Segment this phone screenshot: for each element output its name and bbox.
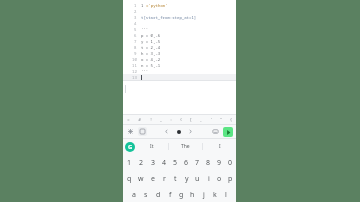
button[interactable]: e bbox=[147, 171, 159, 187]
staticText: G bbox=[128, 143, 133, 151]
button[interactable]: q bbox=[123, 171, 135, 187]
button[interactable]: Format bbox=[126, 127, 135, 136]
button[interactable]: 4 bbox=[159, 155, 170, 171]
staticText: h = 3,-3 bbox=[141, 51, 161, 56]
staticText: r bbox=[163, 174, 166, 184]
button[interactable]: Next bbox=[186, 127, 195, 136]
staticText: 8 bbox=[134, 45, 137, 50]
button[interactable]: 7 bbox=[192, 155, 203, 171]
staticText: " bbox=[220, 117, 222, 122]
button[interactable]: 5 bbox=[170, 155, 181, 171]
button[interactable]: ( bbox=[176, 115, 186, 124]
staticText: ''' bbox=[141, 69, 149, 74]
staticText: ( bbox=[180, 117, 182, 122]
staticText: h bbox=[190, 190, 195, 200]
button[interactable]: Keyboard bbox=[211, 127, 220, 136]
staticText: 1 bbox=[127, 158, 132, 168]
button[interactable]: f bbox=[164, 187, 176, 202]
button[interactable]: d bbox=[152, 187, 164, 202]
staticText: 0 bbox=[228, 158, 233, 168]
staticText: It bbox=[150, 143, 154, 150]
button[interactable]: Previous bbox=[162, 127, 171, 136]
staticText: n = 5,-1 bbox=[141, 63, 161, 68]
staticText: i bbox=[208, 174, 210, 184]
button[interactable]: w bbox=[135, 171, 147, 187]
button[interactable]: 9 bbox=[214, 155, 225, 171]
button[interactable]: { bbox=[226, 115, 236, 124]
staticText: 9 bbox=[217, 158, 222, 168]
button[interactable]: o bbox=[214, 171, 225, 187]
staticText: 3 bbox=[151, 158, 156, 168]
button[interactable]: y bbox=[181, 171, 192, 187]
button[interactable]: Grammarly bbox=[125, 142, 135, 152]
staticText: 7 bbox=[134, 39, 137, 44]
staticText: e bbox=[151, 174, 155, 184]
staticText: I bbox=[219, 143, 221, 150]
button[interactable]: 8 bbox=[203, 155, 214, 171]
staticText: ''' bbox=[141, 27, 149, 32]
button[interactable]: ' bbox=[206, 115, 216, 124]
button[interactable]: j bbox=[198, 187, 209, 202]
button[interactable]: 0 bbox=[225, 155, 236, 171]
button[interactable]: g bbox=[176, 187, 187, 202]
staticText: p bbox=[228, 174, 233, 184]
staticText: 8 bbox=[206, 158, 211, 168]
button[interactable]: Run bbox=[223, 127, 233, 137]
button[interactable]: k bbox=[209, 187, 220, 202]
button[interactable]: _ bbox=[156, 115, 166, 124]
button[interactable]: a bbox=[128, 187, 140, 202]
button[interactable]: ! bbox=[145, 115, 156, 124]
staticText: y bbox=[185, 174, 189, 184]
staticText: o = 4,-2 bbox=[141, 57, 161, 62]
staticText: s bbox=[144, 190, 148, 200]
button[interactable]: , bbox=[196, 115, 206, 124]
button[interactable]: " bbox=[216, 115, 226, 124]
staticText: # bbox=[138, 117, 141, 122]
staticText: 1 bbox=[141, 3, 146, 8]
button[interactable]: I bbox=[203, 139, 236, 154]
button[interactable]: r bbox=[159, 171, 170, 187]
staticText: p = 0,-6 bbox=[141, 33, 161, 38]
button[interactable]: l bbox=[220, 187, 231, 202]
staticText: 11 bbox=[132, 63, 137, 68]
staticText: ! bbox=[150, 117, 152, 122]
button[interactable]: h bbox=[187, 187, 198, 202]
button[interactable]: t bbox=[170, 171, 181, 187]
staticText: o bbox=[217, 174, 222, 184]
staticText: ' bbox=[211, 117, 212, 122]
button[interactable]: s bbox=[140, 187, 152, 202]
staticText: g bbox=[179, 190, 184, 200]
staticText: 13 bbox=[132, 75, 137, 80]
button[interactable]: Copy bbox=[138, 127, 147, 136]
staticText: 5 bbox=[134, 27, 137, 32]
staticText: 5 bbox=[173, 158, 178, 168]
button[interactable]: # bbox=[134, 115, 145, 124]
staticText: d bbox=[156, 190, 161, 200]
staticText: 6 bbox=[134, 33, 137, 38]
staticText: 9 bbox=[134, 51, 137, 56]
button[interactable]: 1 bbox=[123, 155, 135, 171]
button[interactable]: 3 bbox=[147, 155, 159, 171]
staticText: 10 bbox=[132, 57, 137, 62]
button[interactable]: It bbox=[135, 139, 168, 154]
button[interactable]: = bbox=[123, 115, 134, 124]
staticText: 2 bbox=[134, 9, 137, 14]
staticText: y = 1,-5 bbox=[141, 39, 161, 44]
button[interactable]: [ bbox=[186, 115, 196, 124]
button[interactable]: u bbox=[192, 171, 203, 187]
button[interactable]: i bbox=[203, 171, 214, 187]
staticText: u bbox=[195, 174, 200, 184]
button[interactable]: The bbox=[169, 139, 202, 154]
staticText: q bbox=[127, 174, 132, 184]
button[interactable]: 6 bbox=[181, 155, 192, 171]
staticText: t bbox=[174, 174, 177, 184]
button[interactable]: 2 bbox=[135, 155, 147, 171]
staticText: ='python' bbox=[146, 3, 168, 8]
staticText: j bbox=[203, 190, 205, 200]
staticText: , bbox=[200, 117, 202, 122]
staticText: t[start_from:step_at=1] bbox=[141, 15, 197, 20]
button[interactable]: Cursor bbox=[175, 128, 182, 135]
button[interactable]: p bbox=[225, 171, 236, 187]
staticText: : bbox=[170, 117, 172, 122]
